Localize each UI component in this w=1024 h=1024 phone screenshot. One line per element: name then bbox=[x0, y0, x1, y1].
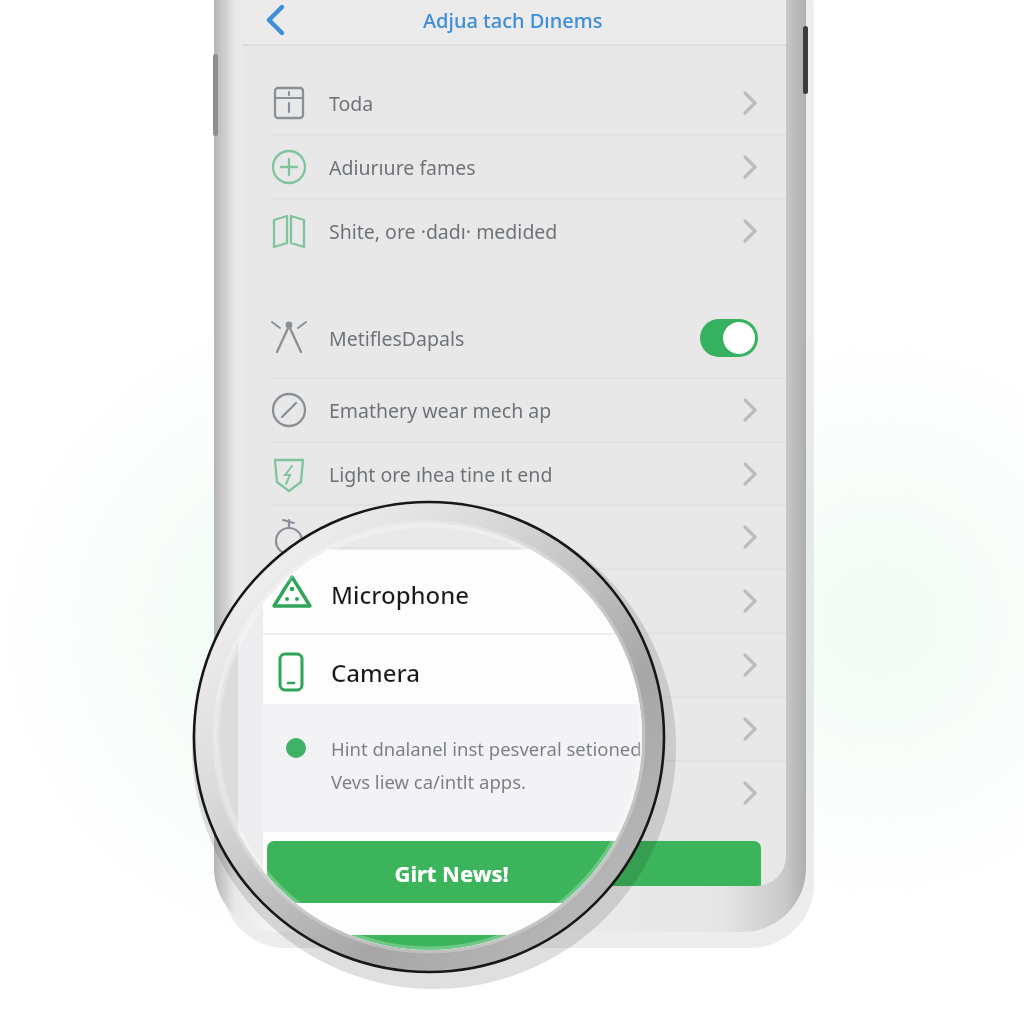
button[interactable]: Permissions settings screen with magnifi… bbox=[0, 0, 1024, 1024]
